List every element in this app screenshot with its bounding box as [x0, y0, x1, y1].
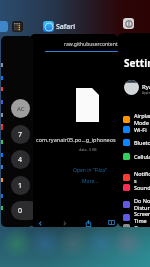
staticText: Cellular — [134, 153, 150, 160]
staticText: raw.githubusercontent.com — [64, 41, 118, 48]
button[interactable]: 1 — [11, 176, 30, 195]
staticText: Notifications — [134, 170, 150, 184]
button[interactable]: Bookmarks — [107, 218, 116, 227]
button[interactable]: Share — [84, 219, 93, 227]
staticText: data - 5 KB — [79, 147, 97, 152]
button[interactable]: More... — [82, 178, 99, 185]
button[interactable]: Calculator — [12, 21, 23, 32]
staticText: 0 — [18, 206, 23, 216]
staticText: 7 — [18, 130, 23, 140]
staticText: Settings — [124, 56, 150, 70]
staticText: Open in “Filza” — [73, 167, 107, 174]
button[interactable]: Screen Time — [123, 210, 150, 224]
button[interactable]: Notifications — [123, 170, 150, 184]
button[interactable]: Airplane Mode — [123, 112, 150, 126]
button[interactable]: Cellular — [123, 153, 150, 160]
button[interactable]: Forward — [60, 219, 69, 227]
staticText: 1 — [18, 181, 23, 191]
button[interactable]: AC — [11, 99, 30, 118]
staticText: Screen Time — [134, 210, 150, 224]
button[interactable]: Wi-Fi — [123, 126, 147, 133]
button[interactable]: Safari — [43, 21, 76, 32]
staticText: 4 — [18, 155, 23, 165]
button[interactable]: Settings — [118, 33, 150, 227]
button[interactable]: Bluetooth — [123, 139, 150, 146]
button[interactable]: 0 — [11, 201, 33, 220]
staticText: com.ryanair05.po...g_iphoneos — [36, 136, 116, 143]
staticText: Wi-Fi — [134, 126, 147, 133]
button[interactable]: 7 — [11, 125, 30, 144]
button[interactable]: AC — [1, 36, 33, 227]
button[interactable]: Back — [36, 219, 45, 227]
button[interactable]: Do Not Disturb — [123, 197, 150, 211]
button[interactable]: Settings — [123, 18, 134, 29]
button[interactable]: Open in “Filza” — [73, 167, 107, 174]
button[interactable]: raw.githubusercontent.com — [30, 34, 118, 227]
staticText: More... — [82, 178, 99, 185]
button[interactable]: Sounds — [123, 184, 150, 191]
staticText: Airplane Mode — [134, 112, 150, 126]
staticText: Safari — [56, 22, 76, 32]
staticText: Apple ID, iCloud, Media — [142, 91, 150, 95]
button[interactable]: App — [0, 21, 8, 32]
staticText: Do Not Disturb — [134, 197, 150, 211]
staticText: Sounds — [134, 184, 150, 191]
staticText: Bluetooth — [134, 139, 150, 146]
staticText: Ryanair — [142, 83, 150, 91]
button[interactable]: 4 — [11, 150, 30, 169]
staticText: General — [134, 224, 150, 227]
staticText: AC — [17, 105, 25, 113]
